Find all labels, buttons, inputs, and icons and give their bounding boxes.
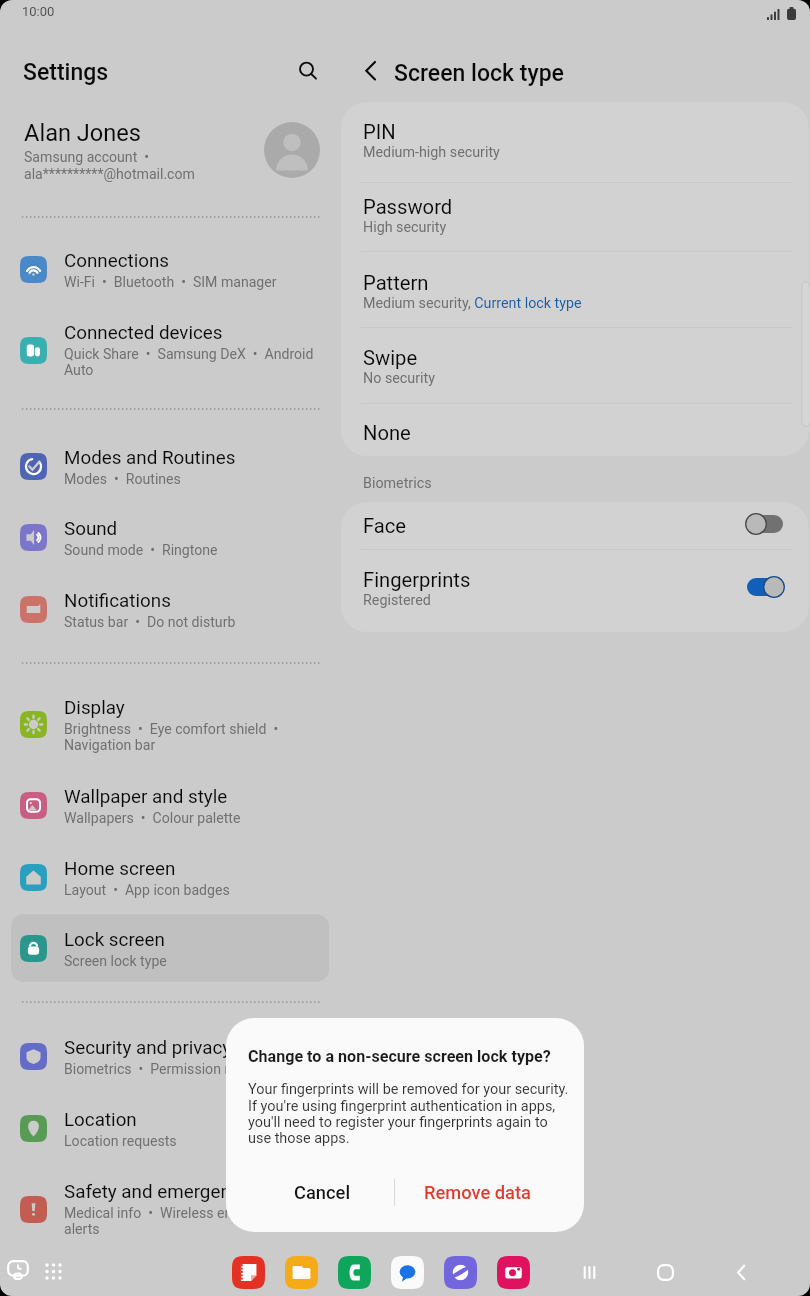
button[interactable]: [341, 102, 809, 182]
button[interactable]: [11, 1094, 329, 1162]
staticText: Medium-high security: [363, 144, 500, 161]
button[interactable]: [11, 1175, 329, 1243]
staticText: Quick Share • Samsung DeX • Android Auto: [64, 346, 314, 378]
button[interactable]: [11, 914, 329, 982]
staticText: Screen lock type: [64, 953, 167, 970]
button[interactable]: All apps: [35, 1253, 71, 1289]
staticText: Remove data: [424, 1182, 532, 1203]
button[interactable]: [341, 251, 809, 327]
button[interactable]: App 3: [391, 1256, 424, 1289]
staticText: Modes • Routines: [64, 471, 181, 488]
button[interactable]: Cancel: [232, 1166, 412, 1218]
staticText: Wallpapers • Colour palette: [64, 810, 241, 827]
button[interactable]: Home: [647, 1254, 683, 1290]
staticText: Change to a non-secure screen lock type?: [248, 1047, 551, 1066]
staticText: Home screen: [64, 858, 176, 880]
button[interactable]: [11, 843, 329, 911]
button[interactable]: [11, 432, 329, 500]
staticText: Fingerprints: [363, 568, 471, 592]
staticText: Sound mode • Ringtone: [64, 542, 218, 559]
staticText: 10:00: [22, 4, 55, 19]
button[interactable]: App 5: [497, 1256, 530, 1289]
button[interactable]: [341, 549, 809, 632]
staticText: Samsung account •: [24, 149, 149, 166]
staticText: Biometrics: [363, 475, 432, 492]
staticText: Safety and emergency: [64, 1181, 250, 1203]
button[interactable]: Back: [723, 1254, 759, 1290]
staticText: Biometrics • Permission manager: [64, 1061, 281, 1078]
staticText: Medical info • Wireless emergency alerts: [64, 1205, 287, 1237]
staticText: Notifications: [64, 590, 171, 612]
staticText: Alan Jones: [24, 119, 142, 147]
staticText: No security: [363, 370, 435, 387]
staticText: ala**********@hotmail.com: [24, 166, 195, 183]
staticText: Medium security, Current lock type: [363, 295, 582, 312]
button[interactable]: [11, 316, 329, 384]
staticText: Wi-Fi • Bluetooth • SIM manager: [64, 274, 277, 291]
button[interactable]: [11, 1022, 329, 1090]
staticText: Face: [363, 514, 407, 538]
staticText: Password: [363, 195, 453, 219]
staticText: Wallpaper and style: [64, 786, 228, 808]
staticText: Your fingerprints will be removed for yo…: [248, 1081, 569, 1146]
staticText: Modes and Routines: [64, 447, 236, 469]
button[interactable]: [11, 771, 329, 839]
staticText: Location: [64, 1109, 137, 1131]
staticText: Display: [64, 697, 125, 719]
staticText: Screen lock type: [394, 60, 564, 87]
button[interactable]: [11, 690, 329, 758]
staticText: Swipe: [363, 346, 418, 370]
staticText: Status bar • Do not disturb: [64, 614, 236, 631]
button[interactable]: App 4: [444, 1256, 477, 1289]
button[interactable]: [341, 502, 809, 549]
button[interactable]: Task switcher: [0, 1253, 36, 1289]
staticText: Location requests: [64, 1133, 177, 1150]
staticText: PIN: [363, 120, 396, 144]
button[interactable]: [11, 503, 329, 571]
staticText: Connected devices: [64, 322, 223, 344]
staticText: Lock screen: [64, 929, 165, 951]
button[interactable]: [341, 403, 809, 456]
staticText: Cancel: [294, 1182, 351, 1203]
staticText: Connections: [64, 250, 170, 272]
button[interactable]: [11, 235, 329, 303]
button[interactable]: App 1: [285, 1256, 318, 1289]
button[interactable]: [341, 182, 809, 251]
button[interactable]: Remove data: [388, 1166, 568, 1218]
button[interactable]: Back: [353, 53, 389, 89]
staticText: Settings: [23, 59, 109, 86]
staticText: Layout • App icon badges: [64, 882, 230, 899]
button[interactable]: [341, 327, 809, 403]
button[interactable]: Search: [289, 52, 325, 88]
button[interactable]: App 2: [338, 1256, 371, 1289]
button[interactable]: App 0: [232, 1256, 265, 1289]
staticText: Security and privacy: [64, 1037, 232, 1059]
staticText: High security: [363, 219, 447, 236]
button[interactable]: Alan Jones: [8, 108, 332, 192]
staticText: None: [363, 421, 411, 445]
button[interactable]: Recent apps: [571, 1254, 607, 1290]
staticText: Registered: [363, 592, 431, 609]
button[interactable]: [11, 575, 329, 643]
staticText: Brightness • Eye comfort shield • Naviga…: [64, 721, 279, 753]
staticText: Pattern: [363, 271, 429, 295]
staticText: Sound: [64, 518, 118, 540]
